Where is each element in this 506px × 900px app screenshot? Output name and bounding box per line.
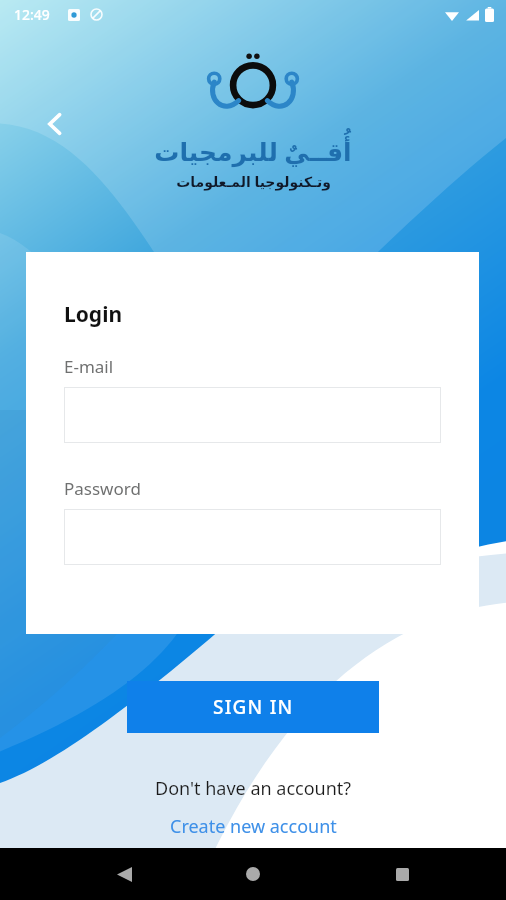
staticText: E-mail	[64, 355, 114, 378]
staticText: Login	[64, 300, 123, 329]
button[interactable]: Back	[33, 102, 77, 146]
button[interactable]	[64, 509, 441, 565]
staticText: Create new account	[170, 814, 337, 839]
button[interactable]: Recents	[382, 854, 422, 894]
button[interactable]: Create new account	[162, 812, 345, 841]
staticText: Don't have an account?	[155, 776, 352, 801]
staticText: أُقــيٌ للبرمجيات	[154, 134, 352, 168]
staticText: SIGN IN	[213, 694, 294, 720]
button[interactable]: SIGN IN	[127, 681, 379, 733]
button[interactable]	[64, 387, 441, 443]
staticText: وتـكنولوجيا المـعلومات	[176, 172, 331, 191]
button[interactable]: Back	[104, 854, 144, 894]
staticText: 12:49	[14, 5, 50, 24]
staticText: Password	[64, 477, 141, 500]
button[interactable]: Home	[233, 854, 273, 894]
